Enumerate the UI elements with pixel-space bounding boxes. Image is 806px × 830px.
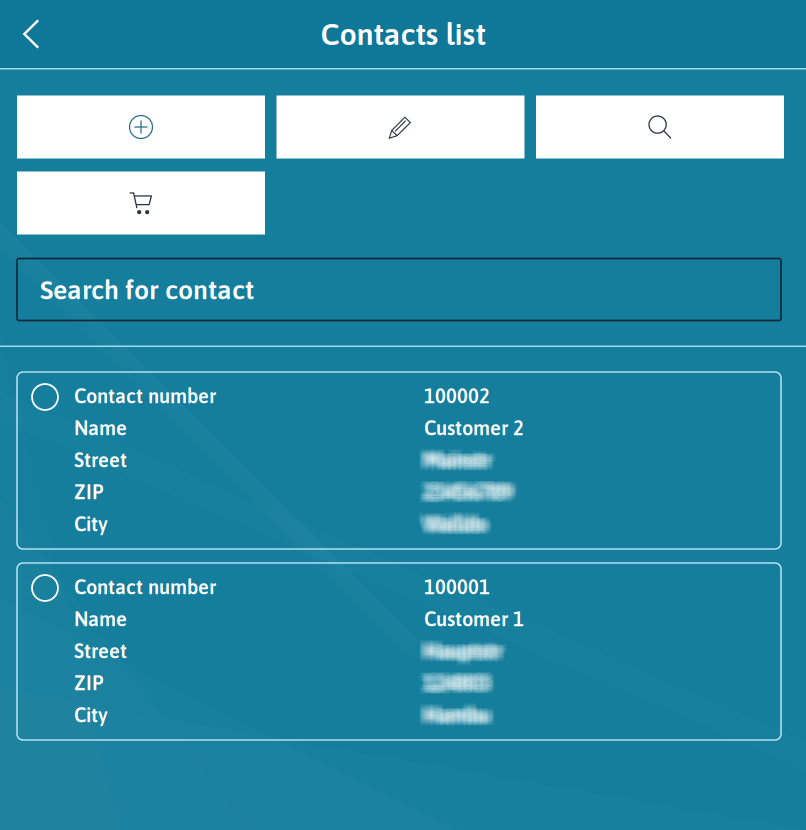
staticText: Mainstr [426,445,492,468]
staticText: Hauptstr [430,639,507,662]
staticText: 124803 [422,670,488,693]
staticText: 23456789 [421,482,509,505]
staticText: Hauptstr [425,639,502,662]
staticText: 124803 [419,669,485,692]
staticText: Hambu [421,705,486,728]
staticText: 23456789 [428,483,516,506]
staticText: Mainstr [427,448,493,471]
staticText: Mainstr [418,445,484,468]
staticText: Hambu [428,701,493,724]
staticText: Walldo [425,512,487,535]
staticText: Mainstr [426,447,492,470]
staticText: Mainstr [429,448,495,471]
staticText: 124803 [420,671,486,694]
staticText: 124803 [421,670,487,692]
staticText: Hauptstr [424,641,501,663]
staticText: Mainstr [424,445,490,468]
staticText: 23456789 [424,479,512,502]
staticText: ZIP [74,480,103,503]
staticText: Mainstr [428,446,494,469]
staticText: 124803 [427,670,493,692]
staticText: 23456789 [424,478,512,501]
staticText: Walldo [421,511,483,533]
button[interactable]: Contact number [17,563,781,740]
staticText: Mainstr [430,448,496,471]
staticText: 124803 [429,671,495,694]
staticText: Walldo [430,516,492,539]
button[interactable]: Contact number [17,372,781,549]
button[interactable]: Search contacts [536,95,784,158]
staticText: Mainstr [421,447,487,469]
staticText: Hauptstr [419,639,496,662]
staticText: 124803 [424,669,490,692]
staticText: Mainstr [426,451,492,474]
staticText: Hambu [430,703,495,726]
staticText: Hauptstr [421,638,498,660]
staticText: Walldo [426,515,488,538]
staticText: Hambu [424,707,489,730]
staticText: Mainstr [423,448,489,471]
staticText: Hambu [424,703,489,726]
staticText: Walldo [427,514,489,537]
button[interactable]: Shopping cart [17,171,265,234]
staticText: 23456789 [424,483,512,506]
staticText: Hauptstr [422,641,499,664]
staticText: Hambu [428,706,493,729]
staticText: Mainstr [417,448,483,471]
staticText: Hauptstr [417,639,494,662]
staticText: 124803 [428,671,494,694]
staticText: Walldo [422,509,484,532]
staticText: Hauptstr [426,638,503,661]
staticText: Walldo [421,514,483,537]
staticText: Walldo [419,512,481,535]
staticText: Walldo [426,509,488,532]
staticText: Walldo [419,515,481,538]
staticText: Mainstr [419,446,485,469]
staticText: Walldo [428,510,490,533]
staticText: 124803 [426,674,492,697]
staticText: 100001 [424,575,490,598]
staticText: Hauptstr [426,636,503,659]
staticText: Hauptstr [422,642,499,665]
staticText: 23456789 [421,479,509,501]
staticText: Contacts list [320,16,485,51]
staticText: 124803 [422,668,488,691]
staticText: Contact number [74,384,216,407]
staticText: Hauptstr [428,639,505,662]
staticText: Hauptstr [420,639,497,662]
staticText: Hauptstr [421,639,498,662]
button[interactable]: Edit contact [276,95,524,158]
staticText: Hauptstr [419,642,496,665]
staticText: Hambu [424,705,489,727]
staticText: Walldo [424,510,486,533]
staticText: Walldo [428,515,490,538]
staticText: Name [74,607,127,630]
staticText: Hauptstr [424,637,501,660]
staticText: Hambu [422,702,487,725]
staticText: Street [74,448,127,471]
staticText: Walldo [430,509,492,532]
staticText: Hambu [417,703,482,726]
staticText: Customer 1 [424,607,524,630]
staticText: 23456789 [422,482,510,505]
staticText: 100002 [424,384,490,407]
staticText: Hambu [426,705,491,728]
staticText: 23456789 [430,477,518,500]
staticText: Mainstr [422,451,488,474]
staticText: Mainstr [424,451,490,474]
staticText: Hauptstr [428,637,505,660]
staticText: Walldo [418,509,480,532]
button[interactable]: Back [0,0,57,68]
staticText: Walldo [422,511,484,534]
staticText: Mainstr [422,445,488,468]
staticText: Hauptstr [430,643,507,666]
staticText: Hauptstr [426,642,503,665]
button[interactable]: Create contact [17,95,265,158]
staticText: Hambu [430,707,495,730]
staticText: Walldo [426,511,488,534]
button[interactable]: Search for contact [17,258,781,320]
staticText: Street [74,639,127,662]
staticText: Hambu [426,706,491,729]
staticText: Hambu [419,703,484,726]
staticText: 124803 [421,673,487,696]
